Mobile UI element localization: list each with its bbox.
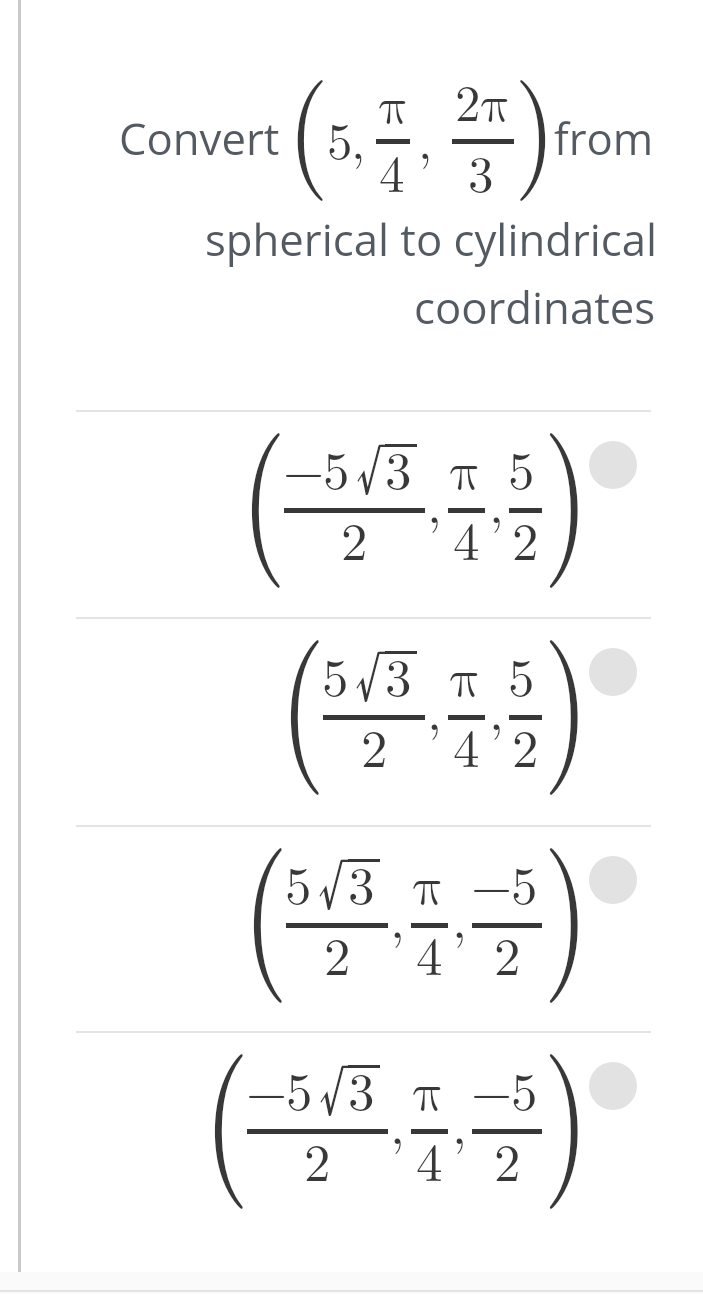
staticText: ) (543, 996, 590, 1214)
staticText: spherical to cylindrical (205, 209, 658, 269)
staticText: 5 (511, 844, 538, 919)
staticText: 5 (508, 636, 535, 711)
button[interactable]: ( (0, 1031, 703, 1238)
staticText: 2 (455, 64, 481, 136)
staticText: 3 (385, 429, 412, 504)
staticText: , (452, 1084, 467, 1159)
staticText: 4 (379, 135, 405, 207)
staticText: , (418, 102, 433, 174)
button[interactable]: ( (0, 825, 703, 1032)
staticText: 5 (511, 1050, 538, 1125)
staticText: ( (242, 790, 289, 1008)
staticText: 2 (512, 500, 539, 575)
staticText: π (379, 82, 409, 133)
other: Select answer 3 (589, 856, 637, 904)
staticText: − (246, 1050, 288, 1125)
staticText: π (481, 80, 511, 131)
staticText: 4 (416, 1121, 443, 1196)
staticText: 5 (286, 1050, 313, 1125)
staticText: 2 (494, 915, 521, 990)
staticText: , (452, 878, 467, 953)
staticText: 3 (468, 135, 494, 207)
staticText: ) (514, 34, 556, 207)
staticText: ( (240, 375, 287, 593)
button[interactable]: ( (0, 410, 703, 617)
staticText: − (471, 1050, 513, 1125)
staticText: 5 (327, 102, 353, 174)
staticText: 2 (512, 707, 539, 782)
staticText: ) (543, 582, 590, 800)
staticText: , (427, 670, 442, 745)
staticText: from (554, 108, 654, 168)
staticText: 2 (494, 1121, 521, 1196)
staticText: ( (287, 34, 329, 207)
staticText: √ (355, 628, 384, 714)
staticText: , (489, 463, 504, 538)
staticText: ( (203, 996, 250, 1214)
staticText: 3 (385, 636, 412, 711)
staticText: π (450, 653, 482, 706)
staticText: 5 (285, 844, 312, 919)
staticText: 4 (453, 500, 480, 575)
staticText: 2 (324, 915, 351, 990)
staticText: , (489, 670, 504, 745)
button[interactable]: ( (0, 617, 703, 824)
staticText: , (390, 1084, 405, 1159)
staticText: 4 (453, 707, 480, 782)
staticText: 2 (304, 1121, 331, 1196)
staticText: 5 (508, 429, 535, 504)
staticText: − (283, 429, 325, 504)
staticText: √ (356, 421, 385, 507)
staticText: ( (279, 582, 326, 800)
staticText: − (471, 844, 513, 919)
other: Select answer 4 (589, 1062, 637, 1110)
staticText: , (351, 102, 366, 174)
staticText: coordinates (414, 277, 656, 337)
staticText: 2 (361, 707, 388, 782)
staticText: π (450, 446, 482, 499)
staticText: 4 (416, 915, 443, 990)
staticText: 2 (341, 500, 368, 575)
staticText: 3 (348, 844, 375, 919)
staticText: √ (319, 1042, 348, 1128)
staticText: ) (543, 790, 590, 1008)
staticText: π (413, 861, 445, 914)
other: Select answer 2 (589, 648, 637, 696)
staticText: √ (318, 836, 347, 922)
staticText: 5 (322, 636, 349, 711)
staticText: ) (543, 375, 590, 593)
staticText: 5 (323, 429, 350, 504)
other: Select answer 1 (589, 441, 637, 489)
staticText: π (413, 1067, 445, 1120)
staticText: , (390, 878, 405, 953)
staticText: Convert (119, 108, 280, 168)
staticText: 3 (348, 1050, 375, 1125)
staticText: , (427, 463, 442, 538)
